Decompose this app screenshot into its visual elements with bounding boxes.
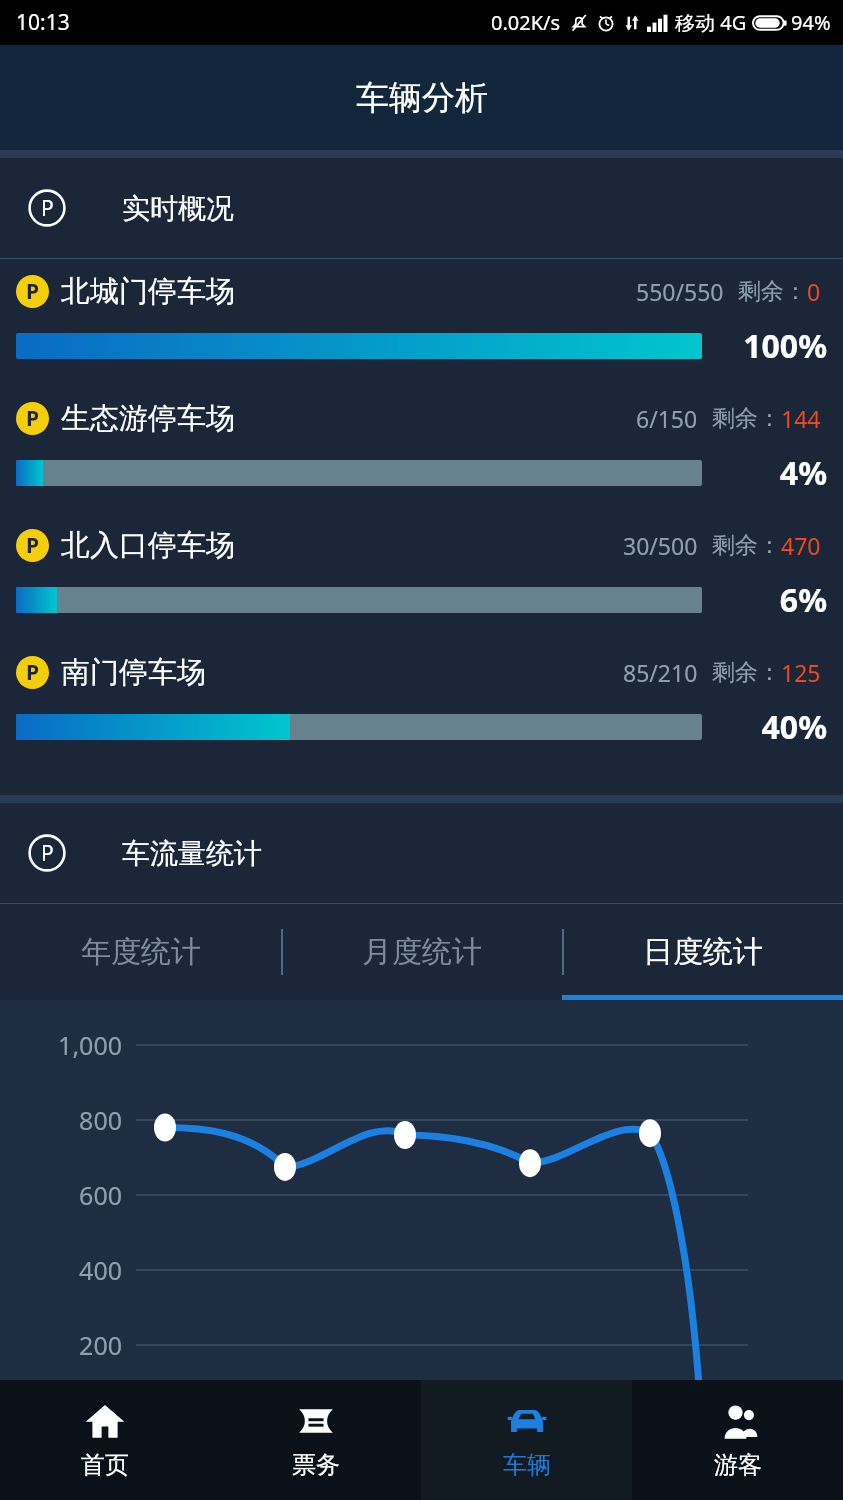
staticText: P (26, 404, 40, 433)
button[interactable]: 日度统计 (562, 904, 843, 1000)
staticText: 车辆 (503, 1450, 551, 1480)
staticText: 0.02K/s (491, 9, 561, 36)
staticText: 票务 (292, 1450, 340, 1480)
staticText: 125 (781, 657, 821, 688)
staticText: 94% (791, 9, 831, 36)
staticText: 85/210 (623, 657, 698, 688)
button[interactable]: 车辆 (421, 1380, 632, 1500)
staticText: 剩余： (712, 658, 781, 687)
staticText: 游客 (714, 1450, 762, 1480)
staticText: 200 (79, 1328, 122, 1362)
staticText: 剩余： (738, 277, 807, 306)
staticText: 400 (79, 1253, 122, 1287)
staticText: 日度统计 (643, 933, 763, 971)
staticText: 生态游停车场 (61, 400, 235, 437)
button[interactable]: 年度统计 (0, 904, 281, 1000)
staticText: 4% (779, 451, 827, 495)
staticText: P (26, 277, 40, 306)
staticText: 800 (79, 1103, 122, 1137)
staticText: 600 (79, 1178, 122, 1212)
staticText: 470 (781, 530, 821, 561)
button[interactable]: P (0, 654, 843, 781)
button[interactable]: P (0, 158, 843, 258)
button[interactable]: P (0, 527, 843, 654)
staticText: 车辆分析 (356, 77, 488, 119)
staticText: 南门停车场 (61, 654, 206, 691)
staticText: 剩余： (712, 531, 781, 560)
staticText: 6% (779, 578, 827, 622)
staticText: P (41, 194, 54, 223)
staticText: 移动 4G (675, 9, 747, 36)
staticText: 40% (761, 705, 827, 749)
button[interactable]: P (0, 273, 843, 400)
staticText: 550/550 (636, 276, 724, 307)
staticText: 车流量统计 (122, 836, 262, 871)
staticText: 100% (743, 324, 827, 368)
staticText: 北入口停车场 (61, 527, 235, 564)
staticText: P (26, 658, 40, 687)
staticText: 实时概况 (122, 191, 234, 226)
button[interactable]: 游客 (632, 1380, 843, 1500)
staticText: 剩余： (712, 404, 781, 433)
button[interactable]: 票务 (210, 1380, 421, 1500)
staticText: 北城门停车场 (61, 273, 235, 310)
staticText: 0 (807, 276, 821, 307)
staticText: 30/500 (623, 530, 698, 561)
staticText: 10:13 (16, 8, 70, 37)
button[interactable]: 首页 (0, 1380, 210, 1500)
button[interactable]: P (0, 803, 843, 903)
staticText: 月度统计 (362, 933, 482, 971)
staticText: 1,000 (58, 1028, 122, 1062)
button[interactable]: P (0, 400, 843, 527)
staticText: 首页 (81, 1450, 129, 1480)
staticText: P (26, 531, 40, 560)
staticText: P (41, 839, 54, 868)
button[interactable]: 月度统计 (281, 904, 562, 1000)
staticText: 6/150 (636, 403, 698, 434)
staticText: 144 (781, 403, 821, 434)
staticText: 年度统计 (81, 933, 201, 971)
